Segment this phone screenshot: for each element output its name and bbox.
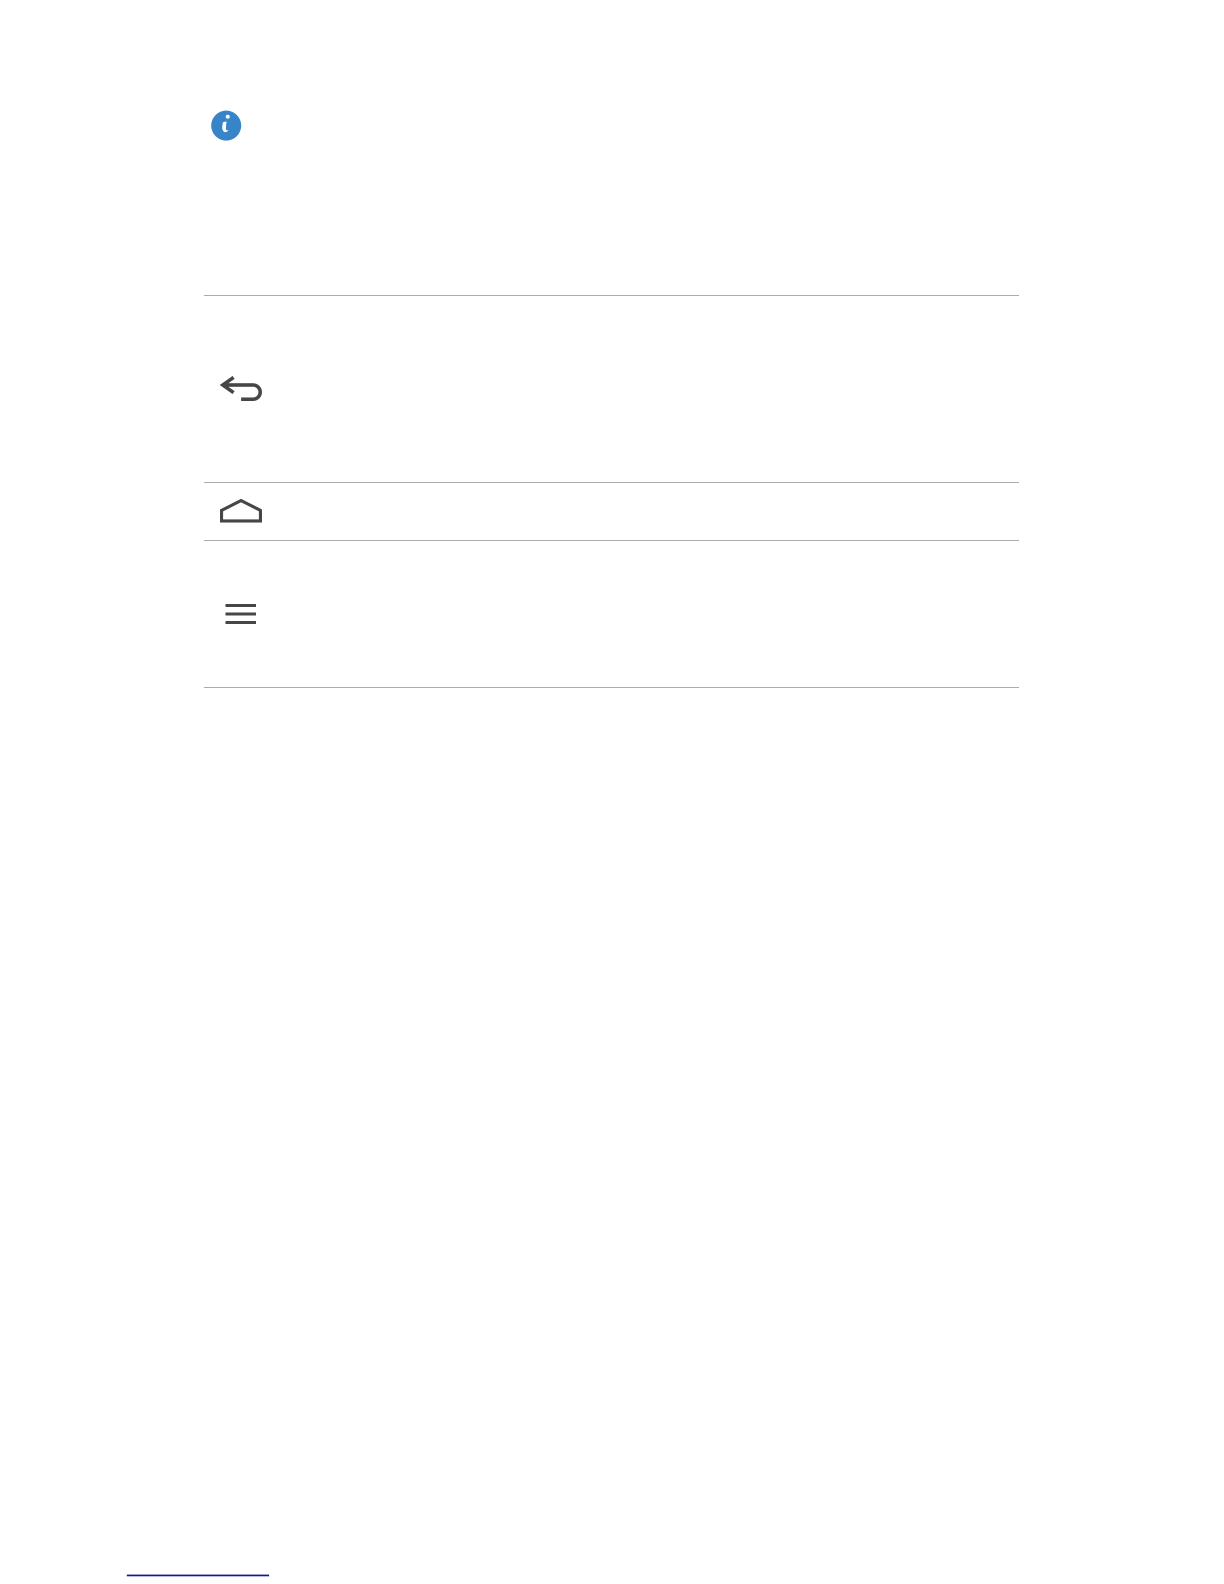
button[interactable]: Back xyxy=(221,376,262,401)
button[interactable]: Information xyxy=(211,111,241,141)
button[interactable]: Home xyxy=(220,499,262,522)
button[interactable]: Recent apps xyxy=(225,604,256,624)
